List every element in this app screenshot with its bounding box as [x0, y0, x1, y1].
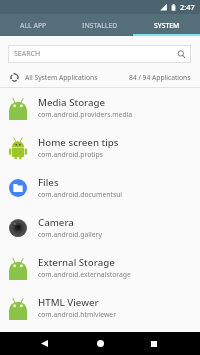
staticText: ALL APP [20, 21, 47, 30]
staticText: com.android.gallery [38, 230, 102, 239]
staticText: Media Storage [38, 96, 106, 109]
button[interactable]: INSTALLED [66, 14, 133, 36]
button[interactable]: HTML Viewer [0, 288, 200, 328]
staticText: com.android.externalstorage [38, 270, 131, 279]
button[interactable]: Files [0, 168, 200, 208]
staticText: com.android.providers.media [38, 110, 133, 119]
button[interactable]: Camera [0, 208, 200, 248]
button[interactable]: SEARCH [8, 45, 191, 63]
staticText: 2:47 [180, 2, 195, 12]
staticText: com.android.htmlviewer [38, 310, 116, 319]
button[interactable]: SYSTEM [133, 14, 200, 36]
staticText: HTML Viewer [38, 296, 99, 309]
staticText: Home screen tips [38, 136, 119, 149]
button[interactable]: ALL APP [0, 14, 66, 36]
staticText: com.android.protips [38, 150, 103, 159]
button[interactable]: Recent apps [142, 332, 166, 355]
button[interactable]: Home screen tips [0, 128, 200, 168]
button[interactable]: External Storage [0, 248, 200, 288]
staticText: com.android.documentsui [38, 190, 123, 199]
button[interactable]: Media Storage [0, 88, 200, 128]
staticText: SEARCH [14, 49, 41, 59]
staticText: Camera [38, 216, 74, 229]
staticText: INSTALLED [82, 21, 118, 30]
staticText: All System Applications [25, 73, 98, 82]
staticText: External Storage [38, 256, 115, 269]
button[interactable]: Search [175, 48, 187, 60]
button[interactable]: Back [32, 332, 56, 355]
staticText: SYSTEM [154, 21, 180, 30]
button[interactable]: Home [88, 332, 112, 355]
staticText: 84 / 94 Applications [129, 73, 191, 82]
staticText: Files [38, 176, 59, 189]
